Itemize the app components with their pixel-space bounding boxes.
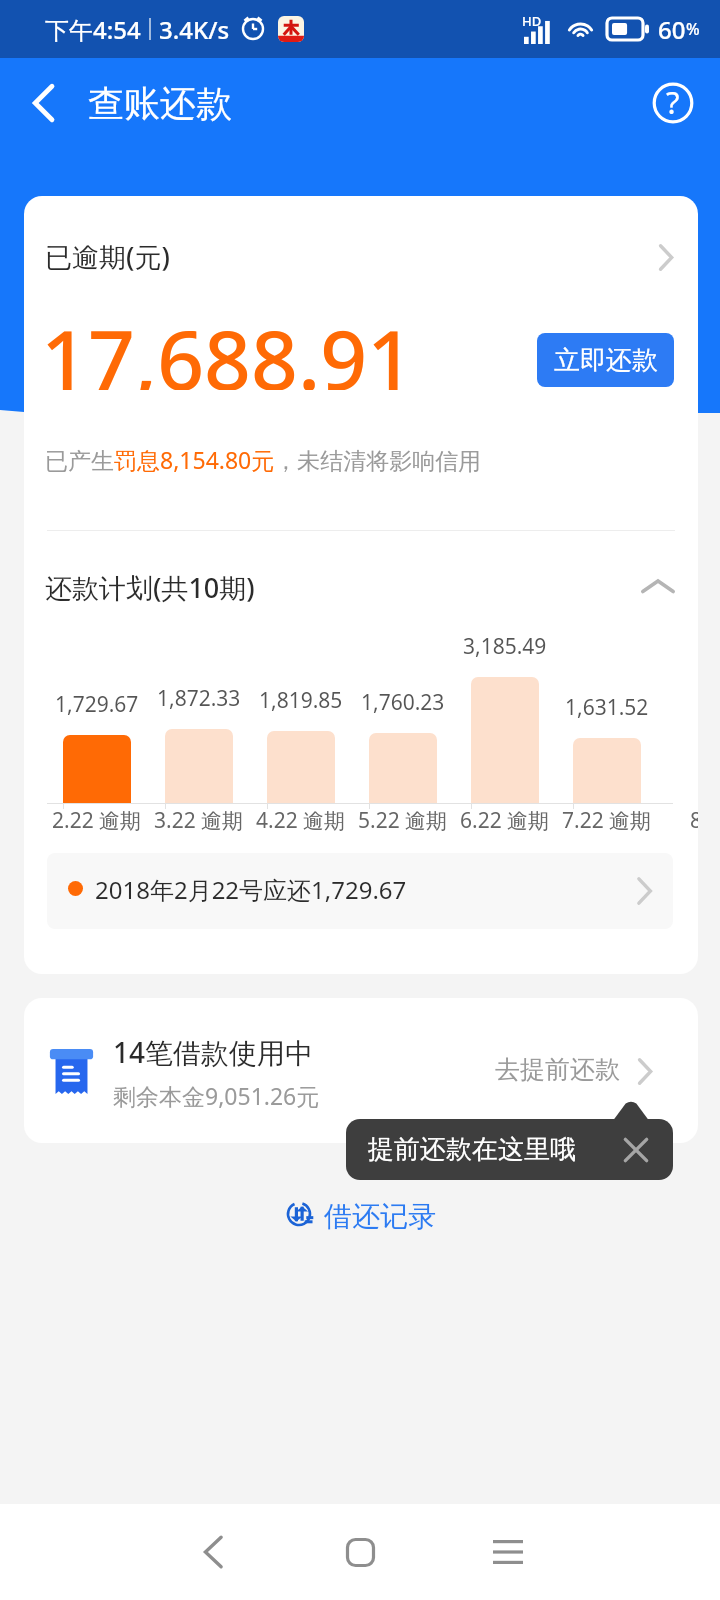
button[interactable]: 还款计划(共10期) bbox=[24, 559, 698, 615]
staticText: 1,729.67 bbox=[55, 690, 139, 719]
staticText: HD bbox=[522, 12, 542, 30]
staticText: 借还记录 bbox=[324, 1199, 436, 1234]
staticText: 提前还款在这里哦 bbox=[368, 1133, 576, 1166]
staticText: 1,872.33 bbox=[157, 684, 241, 713]
staticText: 4.22 逾期 bbox=[256, 806, 346, 835]
button[interactable]: Back bbox=[0, 58, 88, 148]
staticText: 3.4K/s bbox=[159, 13, 230, 46]
staticText: 3.22 逾期 bbox=[154, 806, 244, 835]
staticText: ? bbox=[666, 81, 680, 123]
staticText: 6.22 逾期 bbox=[460, 806, 550, 835]
staticText: 5.22 逾期 bbox=[358, 806, 448, 835]
staticText: 2.22 逾期 bbox=[52, 806, 142, 835]
button[interactable]: 立即还款 bbox=[537, 333, 674, 387]
staticText: 1,819.85 bbox=[259, 686, 343, 715]
staticText: 60 bbox=[658, 13, 686, 46]
staticText: 8 bbox=[690, 806, 698, 835]
button[interactable]: 借还记录 bbox=[272, 1191, 448, 1243]
staticText: 17,688.91 bbox=[41, 302, 415, 390]
button[interactable]: Close bbox=[615, 1129, 657, 1171]
button[interactable]: Back bbox=[158, 1504, 268, 1600]
staticText: 剩余本金9,051.26元 bbox=[113, 1080, 320, 1111]
button[interactable]: 2018年2月22号应还1,729.67 bbox=[47, 853, 673, 929]
staticText: 下午4:54 bbox=[45, 13, 141, 46]
staticText: 3,185.49 bbox=[463, 632, 547, 661]
staticText: 2018年2月22号应还1,729.67 bbox=[95, 873, 407, 906]
button[interactable]: Help bbox=[626, 58, 720, 148]
staticText: 1,631.52 bbox=[565, 693, 649, 722]
button[interactable]: Recents bbox=[453, 1504, 563, 1600]
staticText: 已逾期(元) bbox=[45, 238, 170, 275]
staticText: 已产生罚息8,154.80元，未结清将影响信用 bbox=[45, 444, 482, 475]
staticText: 立即还款 bbox=[554, 344, 658, 377]
staticText: 1,760.23 bbox=[361, 688, 445, 717]
staticText: % bbox=[686, 18, 700, 40]
staticText: 7.22 逾期 bbox=[562, 806, 652, 835]
button[interactable]: 14笔借款使用中 bbox=[24, 998, 698, 1143]
button[interactable]: 已逾期(元) bbox=[24, 233, 698, 279]
staticText: 查账还款 bbox=[88, 81, 232, 126]
button[interactable]: Home bbox=[305, 1504, 415, 1600]
staticText: 14笔借款使用中 bbox=[113, 1033, 314, 1071]
staticText: 还款计划(共10期) bbox=[45, 569, 255, 606]
staticText: 去提前还款 bbox=[495, 1054, 620, 1085]
